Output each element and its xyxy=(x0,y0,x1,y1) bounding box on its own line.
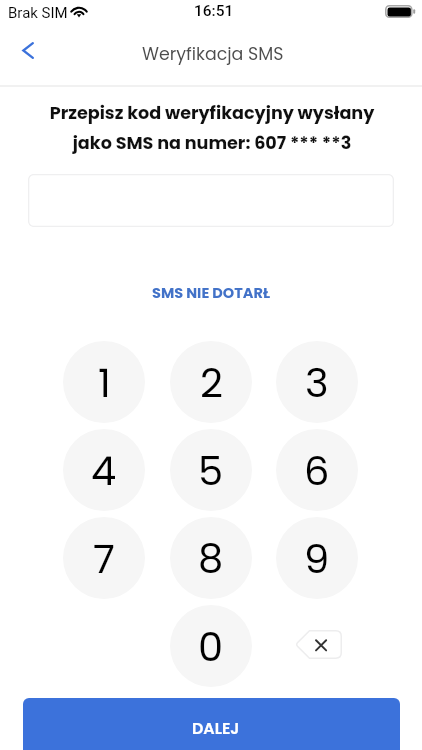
button[interactable]: Back xyxy=(4,26,50,74)
staticText: DALEJ xyxy=(192,717,240,739)
button[interactable]: 7 xyxy=(63,517,145,599)
staticText: 9 xyxy=(304,531,330,587)
staticText: Przepisz kod weryfikacyjny wysłany jako … xyxy=(1,101,422,155)
button[interactable]: DALEJ xyxy=(23,698,400,750)
staticText: 8 xyxy=(198,531,224,587)
button[interactable]: 1 xyxy=(63,341,145,423)
staticText: SMS NIE DOTARŁ xyxy=(152,283,271,303)
button[interactable]: 2 xyxy=(170,341,252,423)
button[interactable]: 8 xyxy=(170,517,252,599)
button[interactable]: 9 xyxy=(276,517,358,599)
button[interactable]: 4 xyxy=(63,429,145,511)
button[interactable]: 3 xyxy=(276,341,358,423)
staticText: 5 xyxy=(198,443,224,499)
staticText: 6 xyxy=(304,443,330,499)
staticText: 3 xyxy=(305,355,329,411)
staticText: 0 xyxy=(198,619,224,675)
staticText: 1 xyxy=(98,355,111,411)
button[interactable]: SMS NIE DOTARŁ xyxy=(138,279,285,307)
button[interactable] xyxy=(28,174,394,227)
staticText: Weryfikacja SMS xyxy=(142,42,284,66)
staticText: 4 xyxy=(91,443,117,499)
button[interactable]: Backspace xyxy=(295,630,342,659)
button[interactable]: 0 xyxy=(170,605,252,687)
staticText: 7 xyxy=(93,531,115,587)
staticText: 16:51 xyxy=(194,2,234,20)
button[interactable]: 6 xyxy=(276,429,358,511)
staticText: Brak SIM xyxy=(8,4,68,22)
staticText: 2 xyxy=(200,355,223,411)
button[interactable]: 5 xyxy=(170,429,252,511)
